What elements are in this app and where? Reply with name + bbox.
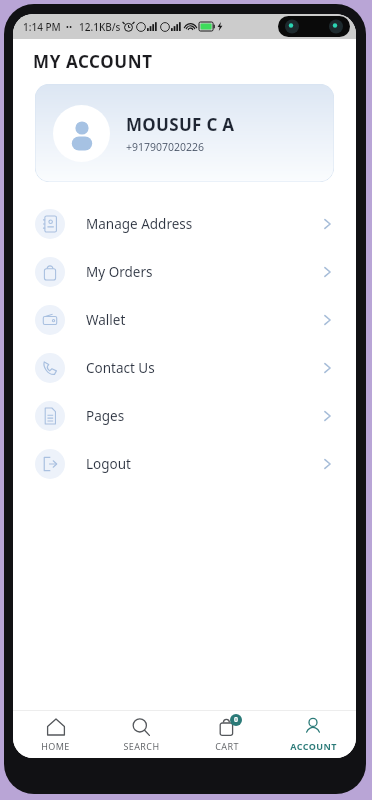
- staticText: Wallet: [86, 311, 126, 329]
- staticText: Logout: [86, 455, 131, 473]
- button[interactable]: SEARCH: [98, 711, 184, 758]
- staticText: ACCOUNT: [290, 740, 337, 752]
- button[interactable]: ACCOUNT: [270, 711, 356, 758]
- staticText: Pages: [86, 407, 125, 425]
- staticText: 0: [234, 715, 239, 725]
- staticText: Manage Address: [86, 215, 193, 233]
- staticText: MY ACCOUNT: [33, 50, 153, 73]
- button[interactable]: My Orders: [13, 248, 356, 296]
- staticText: SEARCH: [123, 740, 160, 752]
- staticText: HOME: [41, 740, 70, 752]
- button[interactable]: Wallet: [13, 296, 356, 344]
- staticText: 1:14 PM: [23, 20, 61, 34]
- button[interactable]: Contact Us: [13, 344, 356, 392]
- staticText: My Orders: [86, 263, 153, 281]
- button[interactable]: Manage Address: [13, 200, 356, 248]
- button[interactable]: 0: [184, 711, 270, 758]
- button[interactable]: Pages: [13, 392, 356, 440]
- button[interactable]: HOME: [13, 711, 98, 758]
- staticText: CART: [215, 740, 239, 752]
- staticText: Contact Us: [86, 359, 155, 377]
- button[interactable]: Logout: [13, 440, 356, 488]
- staticText: MOUSUF C A: [126, 113, 235, 136]
- staticText: +917907020226: [126, 140, 205, 154]
- button[interactable]: MOUSUF C A: [35, 84, 334, 182]
- staticText: 12.1KB/s: [79, 20, 121, 34]
